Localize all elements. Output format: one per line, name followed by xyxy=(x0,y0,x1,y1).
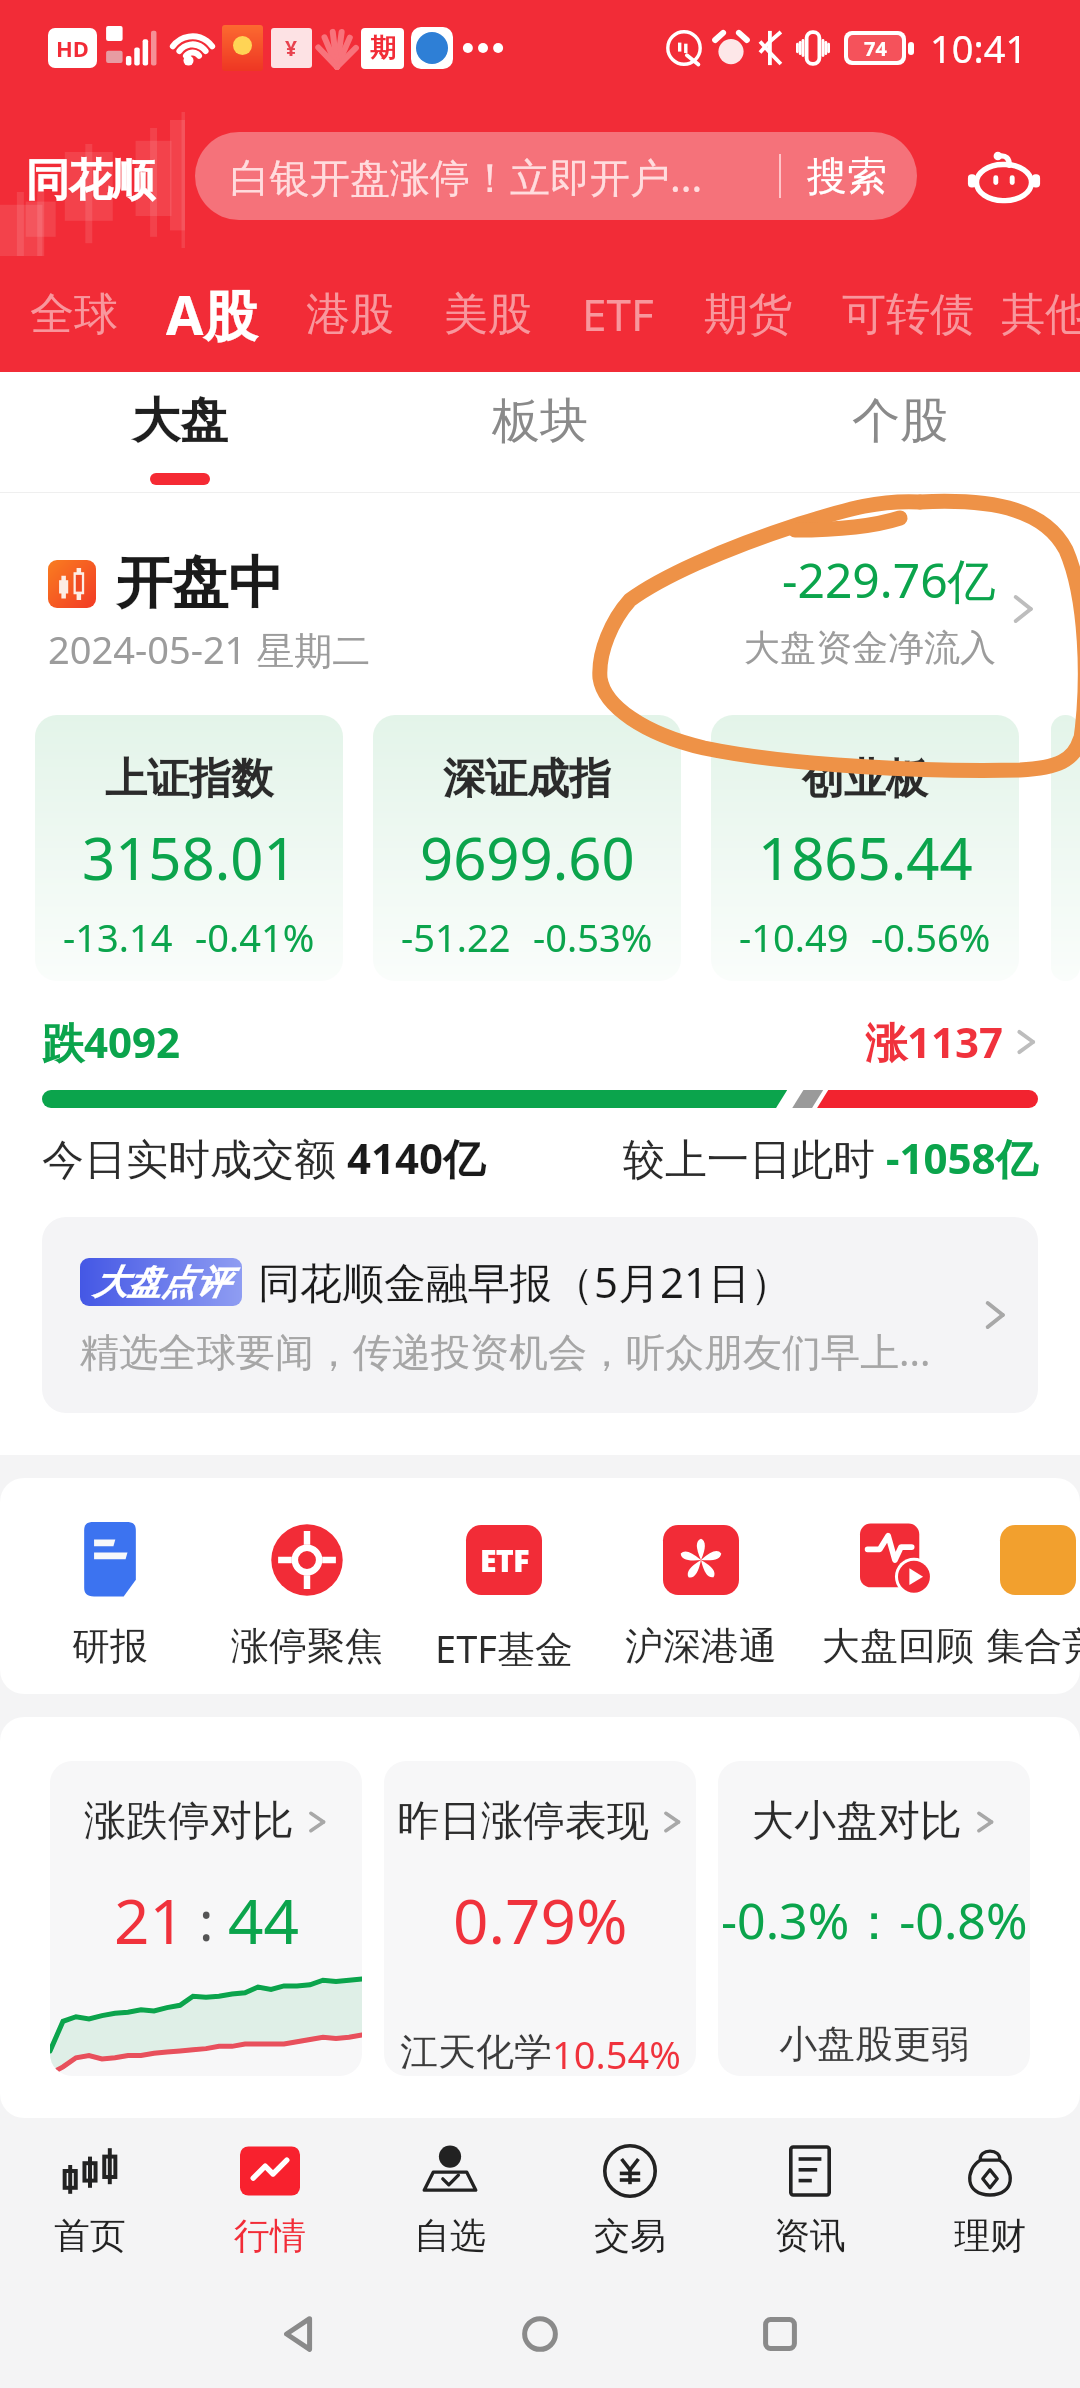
button[interactable]: ETF xyxy=(570,284,666,344)
staticText: 大小盘对比 xyxy=(752,1795,962,1848)
staticText: 集合竞价 xyxy=(986,1622,1080,1670)
button[interactable]: 期货 xyxy=(692,287,804,342)
staticText: 自选 xyxy=(414,2213,486,2258)
staticText: 今日实时成交额 xyxy=(42,1129,347,1186)
button[interactable]: ETF xyxy=(405,1478,602,1694)
staticText: 1865.44 xyxy=(758,818,973,897)
staticText: 白银开盘涨停！立即开户... xyxy=(230,149,703,204)
button[interactable]: 板块 xyxy=(360,372,720,492)
staticText: 深证成指 xyxy=(443,753,611,806)
button[interactable]: Back xyxy=(180,2280,420,2388)
staticText: 理财 xyxy=(954,2213,1026,2258)
button[interactable]: 沪深港通 xyxy=(602,1478,799,1694)
staticText: 21 xyxy=(114,1878,185,1962)
staticText: 3158.01 xyxy=(82,818,297,897)
staticText: -229.76亿 xyxy=(782,547,996,613)
staticText: 开盘中 xyxy=(116,548,284,619)
staticText: 较上一日此时 xyxy=(623,1129,886,1186)
staticText: 可转债 xyxy=(842,287,974,342)
staticText: 首页 xyxy=(54,2213,126,2258)
staticText: 上证指数 xyxy=(105,753,273,806)
staticText: 沪深港通 xyxy=(625,1622,777,1670)
staticText: 创业板 xyxy=(802,753,928,806)
button[interactable]: A股 xyxy=(154,277,270,351)
button[interactable]: 全球 xyxy=(18,287,130,342)
staticText: 4140亿 xyxy=(347,1129,486,1186)
button[interactable]: 理财 xyxy=(900,2118,1080,2280)
staticText: 大盘资金净流入 xyxy=(744,625,996,670)
button[interactable]: 涨1137 xyxy=(865,1013,1038,1070)
staticText: 同花顺金融早报（5月21日） xyxy=(258,1253,793,1310)
button[interactable]: AI assistant xyxy=(954,126,1054,226)
staticText: 0.79% xyxy=(453,1878,628,1962)
button[interactable]: -229.76亿 xyxy=(744,543,1036,666)
staticText: 搜索 xyxy=(807,151,887,201)
button[interactable]: 资讯 xyxy=(720,2118,900,2280)
staticText: 涨1137 xyxy=(865,1013,1004,1070)
button[interactable]: 集合竞价 xyxy=(996,1478,1080,1694)
button[interactable]: 自选 xyxy=(360,2118,540,2280)
staticText: -51.22 xyxy=(401,911,511,963)
staticText: ETF xyxy=(582,284,654,344)
button[interactable]: 上证指数 xyxy=(35,715,343,981)
button[interactable]: 创业板 xyxy=(711,715,1019,981)
button[interactable]: 大盘 xyxy=(0,372,360,492)
button[interactable]: 可转债 xyxy=(830,287,986,342)
button[interactable]: 昨日涨停表现 xyxy=(384,1761,696,2076)
staticText: 同花顺 xyxy=(26,153,155,208)
staticText: 10:41 xyxy=(930,22,1028,74)
button[interactable]: 个股 xyxy=(720,372,1080,492)
button[interactable]: 涨跌停对比 xyxy=(50,1761,362,2076)
button[interactable]: 涨停聚焦 xyxy=(208,1478,405,1694)
button[interactable]: Home xyxy=(420,2280,660,2388)
staticText: -1058亿 xyxy=(886,1129,1038,1186)
staticText: 涨停聚焦 xyxy=(231,1622,383,1670)
staticText: 小盘股更弱 xyxy=(779,2020,969,2068)
staticText: ETF基金 xyxy=(435,1622,573,1674)
staticText: 江天化学 xyxy=(400,2028,552,2076)
button[interactable]: 研报 xyxy=(11,1478,208,1694)
button[interactable]: 大小盘对比 xyxy=(718,1761,1030,2076)
staticText: 资讯 xyxy=(774,2213,846,2258)
button[interactable]: 深证成指 xyxy=(373,715,681,981)
button[interactable]: 交易 xyxy=(540,2118,720,2280)
staticText: 跌4092 xyxy=(42,1013,181,1070)
staticText: -0.41% xyxy=(195,911,315,963)
button[interactable]: 首页 xyxy=(0,2118,180,2280)
staticText: A股 xyxy=(166,277,258,351)
staticText: 个股 xyxy=(852,391,948,451)
staticText: 研报 xyxy=(72,1622,148,1670)
staticText: -0.56% xyxy=(871,911,991,963)
staticText: 行情 xyxy=(234,2213,306,2258)
button[interactable]: Recents xyxy=(660,2280,900,2388)
staticText: 期货 xyxy=(704,287,792,342)
staticText: 44 xyxy=(228,1878,299,1962)
button[interactable]: 港股 xyxy=(294,287,406,342)
staticText: 大盘回顾 xyxy=(822,1622,974,1670)
button[interactable]: 行情 xyxy=(180,2118,360,2280)
button[interactable]: 白银开盘涨停！立即开户... xyxy=(195,132,917,220)
staticText: 昨日涨停表现 xyxy=(397,1795,649,1848)
staticText: 9699.60 xyxy=(420,818,635,897)
staticText: -0.53% xyxy=(533,911,653,963)
staticText: : xyxy=(185,1883,228,1957)
staticText: 涨跌停对比 xyxy=(84,1795,294,1848)
staticText: 大盘点评 xyxy=(93,1261,229,1304)
staticText: 10.54% xyxy=(552,2028,681,2076)
staticText: -13.14 xyxy=(63,911,173,963)
staticText: 2024-05-21 星期二 xyxy=(48,623,371,675)
staticText: 大盘 xyxy=(132,391,228,451)
staticText: 美股 xyxy=(444,287,532,342)
button[interactable]: 大盘点评 xyxy=(42,1217,1038,1413)
staticText: 期 xyxy=(370,32,396,65)
staticText: 其他 xyxy=(1001,287,1080,342)
staticText: ETF xyxy=(480,1540,529,1581)
button[interactable]: 大盘回顾 xyxy=(799,1478,996,1694)
staticText: HD xyxy=(56,33,89,63)
button[interactable]: 美股 xyxy=(432,287,544,342)
staticText: 板块 xyxy=(492,391,588,451)
staticText: ¥ xyxy=(285,34,298,63)
staticText: -10.49 xyxy=(739,911,849,963)
staticText: 港股 xyxy=(306,287,394,342)
button[interactable]: 其他 xyxy=(1010,287,1080,342)
